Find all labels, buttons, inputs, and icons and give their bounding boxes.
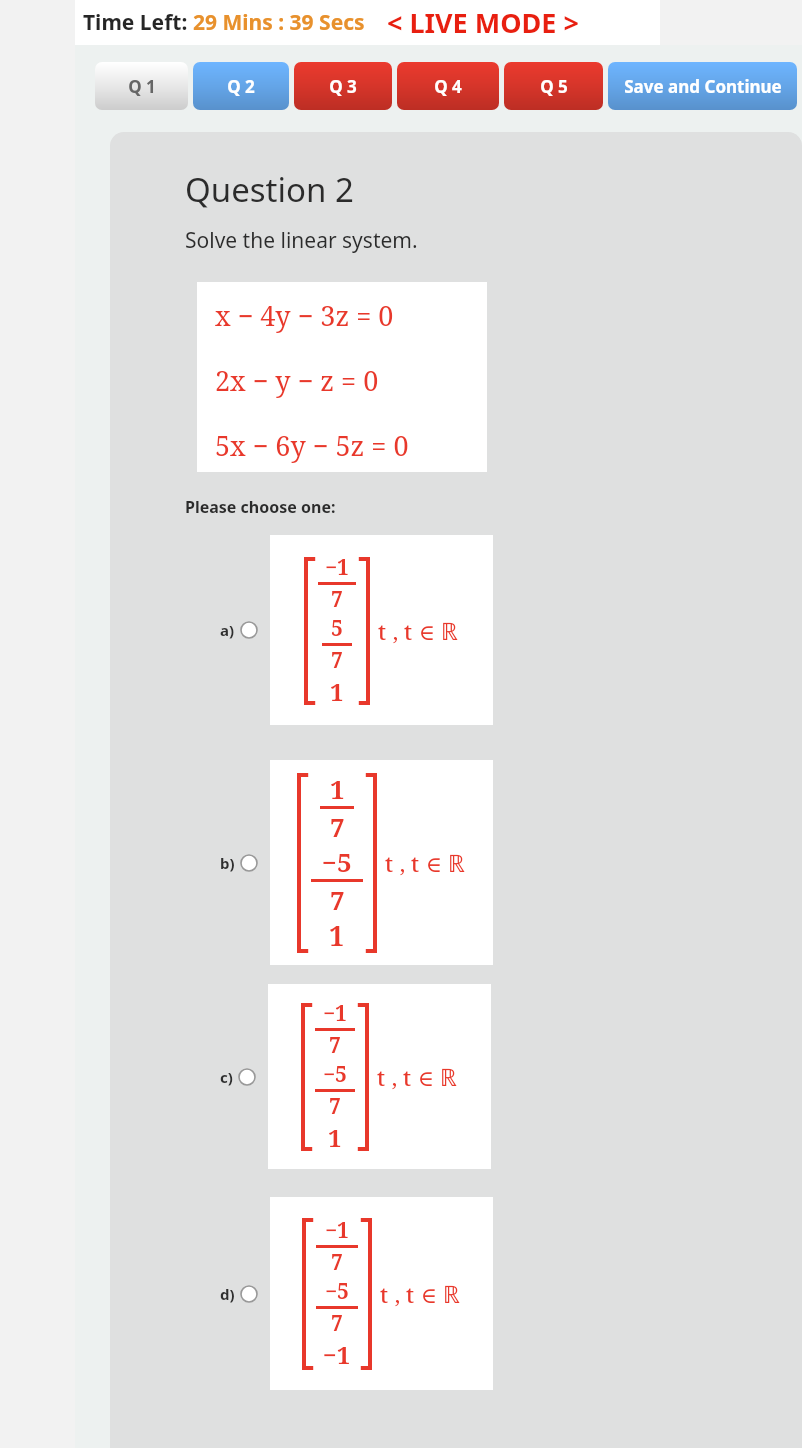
staticText: c) xyxy=(220,1067,233,1087)
staticText: 1 xyxy=(330,675,344,708)
staticText: , xyxy=(386,1062,403,1092)
staticText: ∈ xyxy=(412,1062,440,1092)
staticText: Q 2 xyxy=(227,75,255,98)
button[interactable]: d) xyxy=(110,1197,802,1390)
staticText: −1 xyxy=(323,999,347,1028)
staticText: b) xyxy=(220,853,235,873)
staticText: −1 xyxy=(323,1338,351,1371)
button[interactable]: Q 5 xyxy=(504,62,603,110)
staticText: ℝ xyxy=(441,614,459,647)
staticText: 7 xyxy=(329,1092,341,1121)
staticText: , xyxy=(394,848,411,878)
staticText: 1 xyxy=(330,771,345,806)
staticText: ∈ xyxy=(420,848,448,878)
staticText: t xyxy=(406,1279,415,1309)
staticText: d) xyxy=(220,1284,235,1304)
staticText: Time Left: xyxy=(83,8,193,37)
button[interactable]: Select option a xyxy=(240,621,258,639)
staticText: , xyxy=(389,1279,406,1309)
staticText: Question 2 xyxy=(185,167,354,212)
staticText: 7 xyxy=(331,1248,343,1277)
staticText: Save and Continue xyxy=(624,75,782,98)
staticText: 7 xyxy=(331,585,343,614)
staticText: ℝ xyxy=(443,1277,461,1310)
staticText: ∈ xyxy=(415,1279,443,1309)
staticText: 7 xyxy=(329,1031,341,1060)
button[interactable]: Select option b xyxy=(240,854,258,872)
staticText: t xyxy=(411,848,420,878)
button[interactable]: c) xyxy=(110,984,802,1169)
staticText: Solve the linear system. xyxy=(185,226,418,255)
button[interactable]: Q 4 xyxy=(397,62,499,110)
button[interactable]: Save and Continue xyxy=(608,62,797,110)
staticText: 1 xyxy=(328,1121,342,1154)
staticText: −1 xyxy=(325,553,349,582)
staticText: 2x − y − z = 0 xyxy=(215,362,379,399)
staticText: Q 5 xyxy=(540,75,568,98)
staticText: ∈ xyxy=(413,616,441,646)
button[interactable]: Q 2 xyxy=(193,62,289,110)
staticText: −5 xyxy=(322,844,352,879)
staticText: 7 xyxy=(331,1309,343,1338)
staticText: −1 xyxy=(325,1216,349,1245)
staticText: −5 xyxy=(323,1060,347,1089)
staticText: t xyxy=(403,1062,412,1092)
staticText: x − 4y − 3z = 0 xyxy=(215,297,394,334)
staticText: ℝ xyxy=(448,846,466,879)
staticText: Q 3 xyxy=(329,75,357,98)
staticText: t xyxy=(385,848,394,878)
staticText: < LIVE MODE > xyxy=(387,4,579,41)
staticText: ℝ xyxy=(440,1060,458,1093)
staticText: 1 xyxy=(329,917,345,954)
staticText: 7 xyxy=(330,882,345,917)
staticText: t xyxy=(378,616,387,646)
staticText: 7 xyxy=(330,809,345,844)
staticText: t xyxy=(404,616,413,646)
staticText: 5 xyxy=(331,614,343,643)
button[interactable]: Q 3 xyxy=(294,62,392,110)
staticText: 5x − 6y − 5z = 0 xyxy=(215,427,409,464)
staticText: a) xyxy=(220,620,235,640)
staticText: t xyxy=(380,1279,389,1309)
staticText: Please choose one: xyxy=(185,496,336,518)
button[interactable]: Q 1 xyxy=(95,62,188,110)
button[interactable]: a) xyxy=(110,535,802,725)
staticText: 7 xyxy=(331,646,343,675)
staticText: Q 4 xyxy=(434,75,462,98)
staticText: Q 1 xyxy=(128,75,156,98)
button[interactable]: Select option c xyxy=(238,1068,256,1086)
staticText: 29 Mins : 39 Secs xyxy=(193,8,365,37)
button[interactable]: b) xyxy=(110,760,802,965)
button[interactable]: Select option d xyxy=(240,1285,258,1303)
staticText: t xyxy=(377,1062,386,1092)
staticText: , xyxy=(387,616,404,646)
staticText: −5 xyxy=(325,1277,349,1306)
